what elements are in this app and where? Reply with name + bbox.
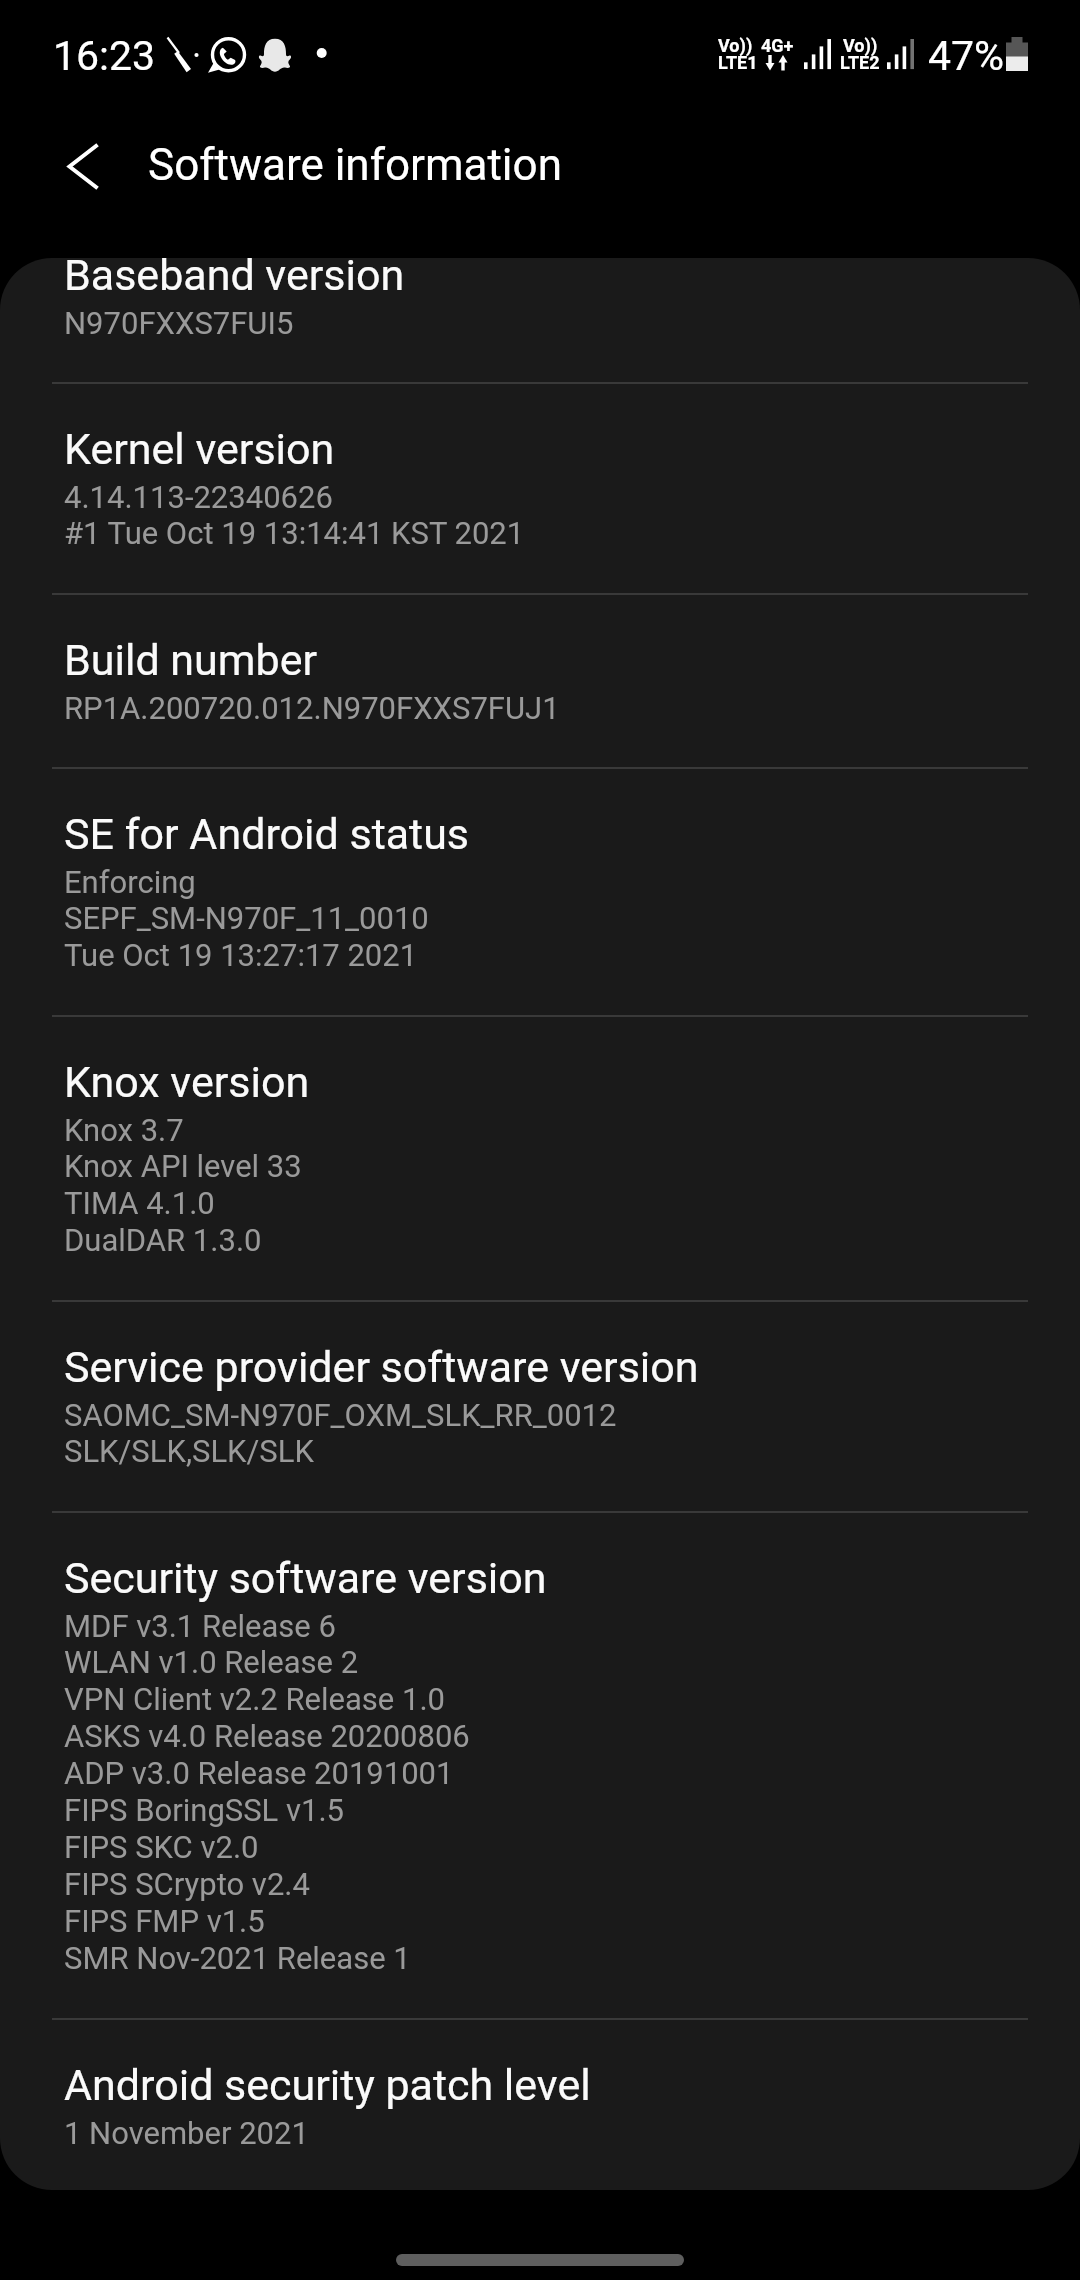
staticText: Knox 3.7 Knox API level 33 TIMA 4.1.0 Du… <box>64 1112 302 1259</box>
staticText: MDF v3.1 Release 6 WLAN v1.0 Release 2 V… <box>64 1608 470 1977</box>
staticText: 16:23 <box>53 32 156 80</box>
button[interactable]: Service provider software version <box>0 1302 1080 1511</box>
staticText: Enforcing SEPF_SM-N970F_11_0010 Tue Oct … <box>64 864 429 974</box>
button[interactable]: SE for Android status <box>0 769 1080 1015</box>
staticText: Software information <box>148 139 562 191</box>
staticText: Service provider software version <box>64 1342 699 1392</box>
staticText: Build number <box>64 635 318 685</box>
staticText: Baseband version <box>64 258 405 300</box>
button[interactable]: Baseband version <box>0 258 1080 382</box>
staticText: Security software version <box>64 1553 547 1603</box>
staticText: 47% <box>928 32 1005 80</box>
staticText: N970FXXS7FUI5 <box>64 305 294 341</box>
staticText: Android security patch level <box>64 2060 591 2110</box>
button[interactable]: Security software version <box>0 1513 1080 2018</box>
button[interactable]: Knox version <box>0 1017 1080 1300</box>
staticText: 1 November 2021 <box>64 2115 309 2151</box>
staticText: Vo)) <box>718 35 753 56</box>
staticText: Knox version <box>64 1057 310 1107</box>
staticText: SE for Android status <box>64 809 470 859</box>
button[interactable]: Back <box>40 122 128 210</box>
button[interactable]: Kernel version <box>0 384 1080 593</box>
staticText: LTE2 <box>840 52 880 73</box>
staticText: RP1A.200720.012.N970FXXS7FUJ1 <box>64 690 560 726</box>
staticText: Kernel version <box>64 424 335 474</box>
staticText: Vo)) <box>843 35 878 56</box>
button[interactable]: Build number <box>0 595 1080 767</box>
staticText: 4G+ <box>761 35 794 56</box>
staticText: LTE1 <box>718 52 758 73</box>
button[interactable]: Android security patch level <box>0 2020 1080 2190</box>
staticText: SAOMC_SM-N970F_OXM_SLK_RR_0012 SLK/SLK,S… <box>64 1397 617 1470</box>
staticText: 4.14.113-22340626 #1 Tue Oct 19 13:14:41… <box>64 479 525 552</box>
